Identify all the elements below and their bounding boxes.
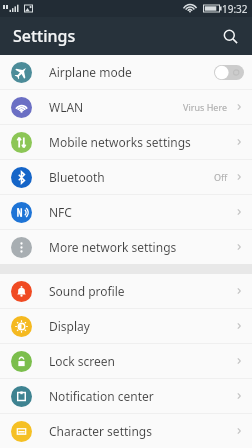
staticText: Lock screen [49, 353, 234, 369]
staticText: Sound profile [49, 283, 234, 299]
staticText: WLAN [49, 99, 183, 115]
staticText: Display [49, 318, 234, 334]
button[interactable]: NFC [0, 195, 252, 229]
staticText: Airplane mode [49, 64, 214, 80]
button[interactable]: Notification center [0, 379, 252, 413]
button[interactable]: Mobile networks settings [0, 125, 252, 159]
staticText: Character settings [49, 423, 234, 439]
button[interactable]: Bluetooth [0, 160, 252, 194]
button[interactable]: Airplane mode toggle [214, 65, 244, 80]
staticText: More network settings [49, 239, 234, 255]
button[interactable]: More network settings [0, 230, 252, 264]
staticText: Off [214, 171, 228, 183]
staticText: Settings [13, 25, 76, 47]
button[interactable]: Display [0, 309, 252, 343]
staticText: Mobile networks settings [49, 134, 234, 150]
button[interactable]: WLAN [0, 90, 252, 124]
staticText: Virus Here [183, 101, 228, 113]
button[interactable]: Character settings [0, 414, 252, 448]
button[interactable]: Sound profile [0, 274, 252, 308]
staticText: Bluetooth [49, 169, 214, 185]
button[interactable]: Airplane mode [0, 55, 252, 89]
button[interactable]: Lock screen [0, 344, 252, 378]
staticText: 19:32 [222, 2, 248, 16]
button[interactable]: Search [216, 22, 244, 50]
staticText: Notification center [49, 388, 234, 404]
staticText: NFC [49, 204, 234, 220]
